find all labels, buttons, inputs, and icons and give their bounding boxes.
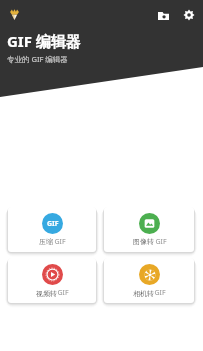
button[interactable]: GIF [8, 207, 96, 252]
staticText: 相机转 [133, 289, 154, 298]
button[interactable]: Premium [5, 5, 23, 23]
staticText: 视频转 [36, 289, 57, 298]
staticText: GIF [54, 237, 66, 247]
staticText: 专业的 GIF 编辑器 [7, 54, 68, 64]
button[interactable]: Settings [179, 5, 199, 25]
staticText: GIF 编辑器 [7, 31, 81, 51]
staticText: GIF [155, 237, 167, 247]
staticText: 压缩 [38, 237, 54, 247]
button[interactable]: 视频转 [8, 258, 96, 303]
staticText: GIF [47, 219, 59, 229]
staticText: GIF [154, 288, 166, 298]
button[interactable]: 图像转 [104, 207, 194, 252]
button[interactable]: 相机转 [104, 258, 194, 303]
staticText: 图像转 [132, 237, 155, 247]
button[interactable]: My files [153, 5, 173, 25]
staticText: GIF [57, 288, 69, 298]
